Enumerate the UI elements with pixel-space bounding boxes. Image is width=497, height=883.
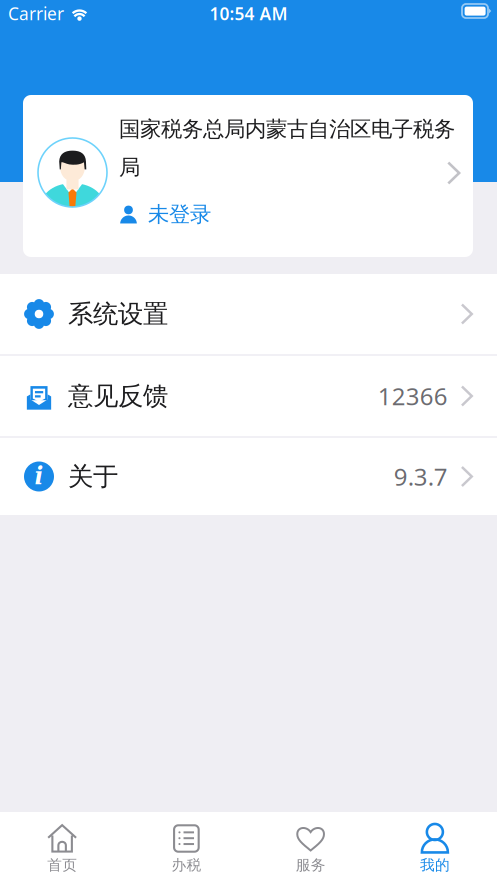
- staticText: 我的: [420, 856, 450, 874]
- staticText: 9.3.7: [394, 461, 448, 492]
- staticText: 未登录: [148, 201, 211, 228]
- button[interactable]: i: [0, 438, 497, 515]
- staticText: 10:54 AM: [209, 2, 287, 25]
- button[interactable]: 办税: [124, 812, 248, 883]
- button[interactable]: 服务: [248, 812, 373, 883]
- button[interactable]: 国家税务总局内蒙古自治区电子税务局: [23, 95, 473, 257]
- button[interactable]: 首页: [0, 812, 124, 883]
- staticText: Carrier: [8, 2, 64, 25]
- staticText: 意见反馈: [68, 380, 168, 411]
- button[interactable]: 我的: [373, 812, 497, 883]
- staticText: i: [34, 463, 43, 490]
- staticText: 12366: [378, 380, 448, 412]
- staticText: 系统设置: [68, 298, 168, 329]
- button[interactable]: 意见反馈: [0, 356, 497, 436]
- staticText: 服务: [296, 856, 326, 874]
- staticText: 首页: [47, 856, 77, 874]
- staticText: 国家税务总局内蒙古自治区电子税务局: [119, 116, 455, 180]
- button[interactable]: 系统设置: [0, 274, 497, 354]
- staticText: 办税: [171, 856, 201, 874]
- staticText: 关于: [68, 461, 118, 492]
